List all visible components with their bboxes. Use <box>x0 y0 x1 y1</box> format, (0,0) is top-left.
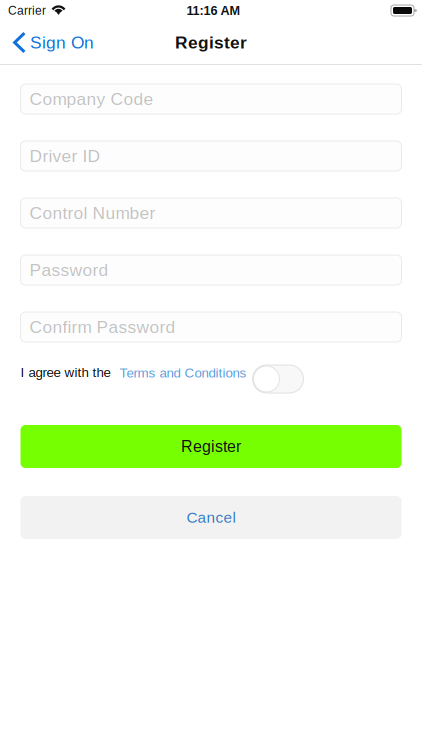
staticText: Company Code <box>29 89 153 109</box>
staticText: Cancel <box>186 509 235 526</box>
button[interactable]: Agree to terms and conditions <box>252 365 303 393</box>
staticText: Register <box>175 33 247 52</box>
staticText: Sign On <box>30 33 94 52</box>
button[interactable]: Sign On <box>0 21 104 64</box>
staticText: 11:16 AM <box>186 3 240 18</box>
staticText: Carrier <box>8 4 46 17</box>
staticText: Driver ID <box>29 146 100 166</box>
staticText: I agree with the <box>20 365 110 380</box>
button[interactable]: Terms and Conditions <box>110 363 249 381</box>
staticText: Terms and Conditions <box>119 366 246 380</box>
staticText: Confirm Password <box>29 317 175 337</box>
button[interactable]: Register <box>20 425 401 468</box>
staticText: Control Number <box>29 203 155 223</box>
staticText: Password <box>29 260 108 280</box>
button[interactable]: Cancel <box>20 496 401 539</box>
staticText: Register <box>181 438 241 455</box>
